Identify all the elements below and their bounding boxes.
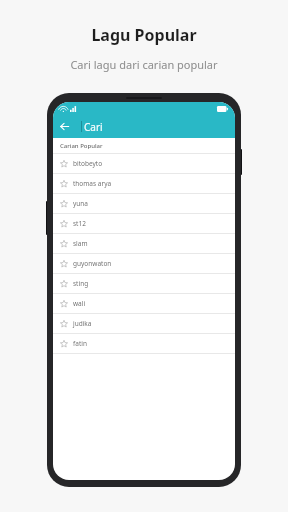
- button[interactable]: yuna: [53, 194, 235, 214]
- staticText: judika: [73, 319, 92, 328]
- staticText: wali: [73, 299, 86, 308]
- staticText: st12: [73, 219, 86, 228]
- button[interactable]: guyonwaton: [53, 254, 235, 274]
- button[interactable]: bitobeyto: [53, 154, 235, 174]
- button[interactable]: st12: [53, 214, 235, 234]
- button[interactable]: Cari: [81, 115, 235, 138]
- button[interactable]: judika: [53, 314, 235, 334]
- button[interactable]: fatin: [53, 334, 235, 354]
- button[interactable]: wali: [53, 294, 235, 314]
- staticText: Lagu Popular: [91, 24, 197, 46]
- staticText: Cari: [84, 120, 103, 134]
- staticText: thomas arya: [73, 179, 112, 188]
- button[interactable]: Back: [53, 115, 76, 138]
- staticText: Carian Popular: [60, 142, 103, 150]
- staticText: sting: [73, 279, 89, 288]
- staticText: Cari lagu dari carian popular: [70, 57, 218, 72]
- staticText: slam: [73, 239, 88, 248]
- staticText: yuna: [73, 199, 88, 208]
- button[interactable]: thomas arya: [53, 174, 235, 194]
- staticText: fatin: [73, 339, 87, 348]
- staticText: bitobeyto: [73, 159, 103, 168]
- button[interactable]: slam: [53, 234, 235, 254]
- staticText: guyonwaton: [73, 259, 112, 268]
- button[interactable]: sting: [53, 274, 235, 294]
